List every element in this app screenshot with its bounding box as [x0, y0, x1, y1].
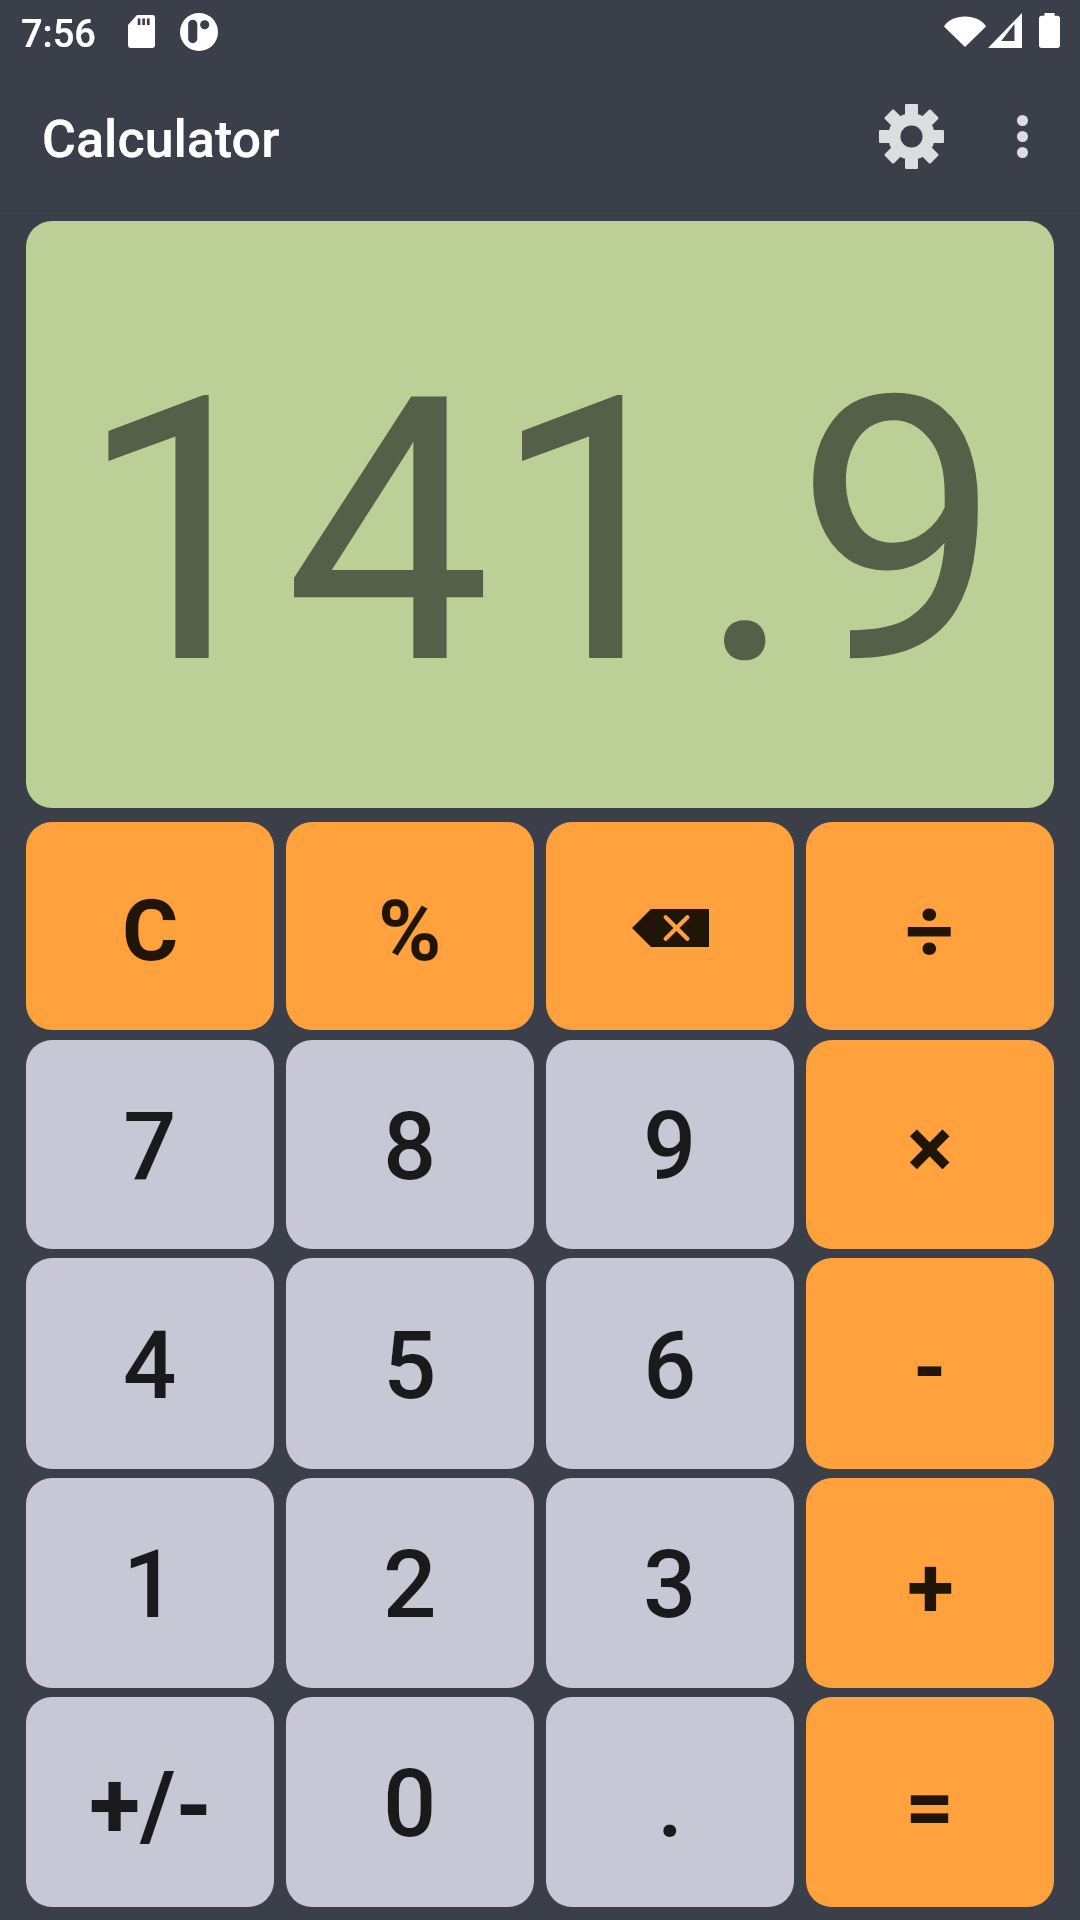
- button[interactable]: Settings: [863, 88, 959, 184]
- staticText: 8: [383, 1092, 437, 1202]
- staticText: 1: [123, 1530, 177, 1640]
- button[interactable]: 5: [286, 1258, 534, 1469]
- button[interactable]: 3: [546, 1478, 794, 1688]
- staticText: ÷: [905, 880, 955, 981]
- staticText: Calculator: [42, 109, 280, 170]
- staticText: 141.9: [26, 317, 1002, 748]
- button[interactable]: 2: [286, 1478, 534, 1688]
- staticText: 5: [383, 1311, 437, 1421]
- staticText: +: [907, 1537, 954, 1638]
- staticText: 3: [643, 1530, 697, 1640]
- staticText: 9: [643, 1092, 697, 1202]
- staticText: C: [122, 880, 179, 981]
- button[interactable]: 4: [26, 1258, 274, 1469]
- staticText: -: [913, 1317, 947, 1418]
- staticText: =: [905, 1756, 955, 1857]
- button[interactable]: .: [546, 1697, 794, 1907]
- staticText: ×: [907, 1098, 953, 1199]
- button[interactable]: 0: [286, 1697, 534, 1907]
- button[interactable]: 6: [546, 1258, 794, 1469]
- button[interactable]: +/-: [26, 1697, 274, 1907]
- staticText: 7: [123, 1092, 177, 1202]
- staticText: +/-: [89, 1751, 212, 1861]
- button[interactable]: 9: [546, 1040, 794, 1249]
- button[interactable]: +: [806, 1478, 1054, 1688]
- button[interactable]: More options: [974, 88, 1070, 184]
- staticText: .: [657, 1749, 684, 1859]
- staticText: 6: [643, 1311, 697, 1421]
- button[interactable]: 7: [26, 1040, 274, 1249]
- button[interactable]: C: [26, 822, 274, 1030]
- button[interactable]: 8: [286, 1040, 534, 1249]
- staticText: 4: [123, 1311, 177, 1421]
- staticText: 7:56: [21, 12, 96, 57]
- button[interactable]: Backspace: [546, 822, 794, 1030]
- button[interactable]: =: [806, 1697, 1054, 1907]
- button[interactable]: ×: [806, 1040, 1054, 1249]
- staticText: 0: [383, 1749, 437, 1859]
- button[interactable]: -: [806, 1258, 1054, 1469]
- button[interactable]: %: [286, 822, 534, 1030]
- staticText: %: [378, 880, 442, 981]
- button[interactable]: ÷: [806, 822, 1054, 1030]
- button[interactable]: 1: [26, 1478, 274, 1688]
- staticText: 2: [383, 1530, 437, 1640]
